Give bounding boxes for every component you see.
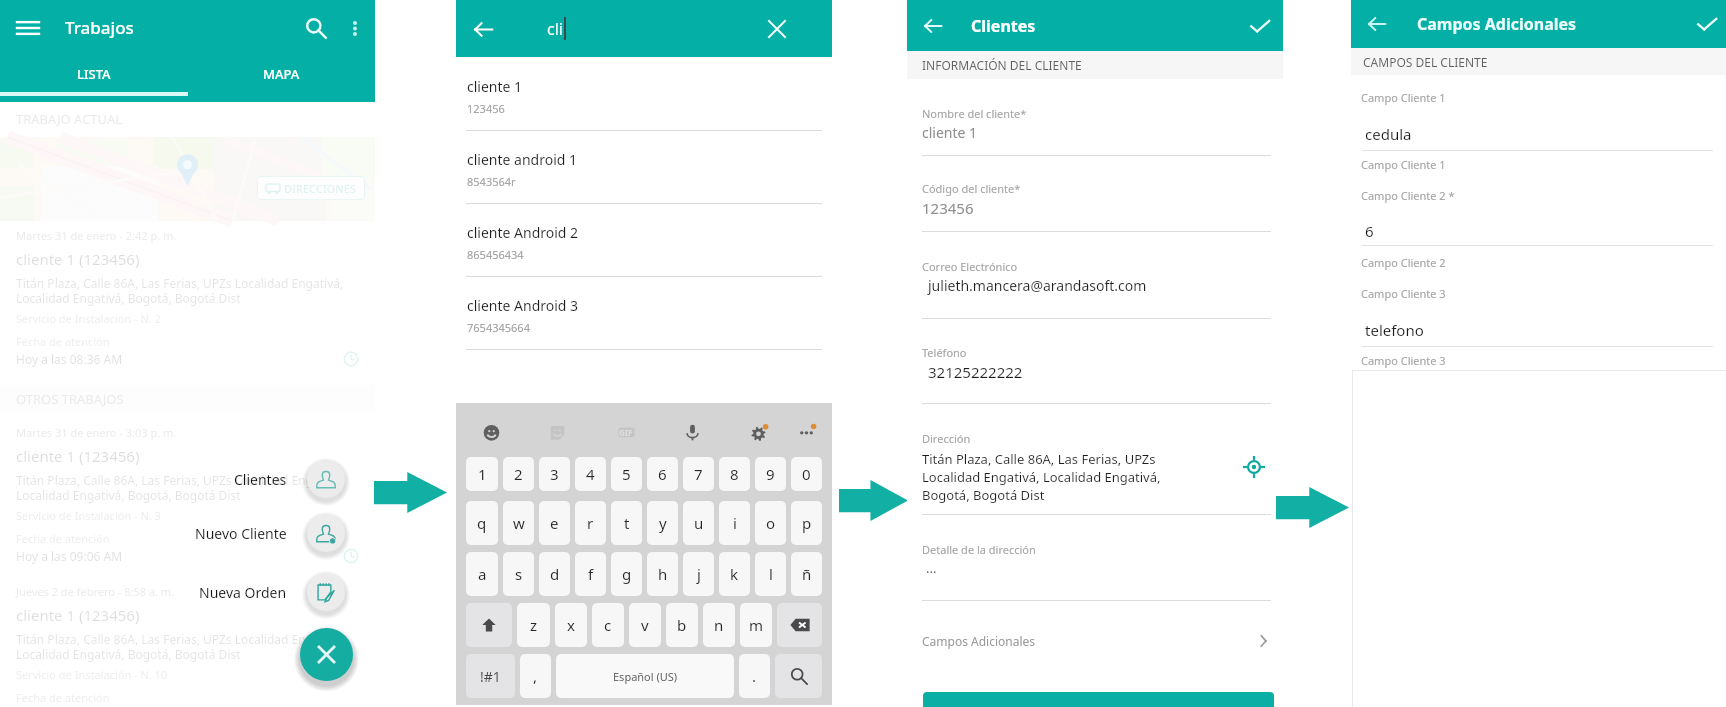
button[interactable]: Campos Adicionales xyxy=(922,628,1269,654)
button[interactable]: q xyxy=(466,501,498,545)
staticText: Martes 31 de enero - 2:42 p. m. xyxy=(16,228,177,243)
button[interactable]: Back xyxy=(1363,10,1391,38)
button[interactable]: 6 xyxy=(647,457,678,491)
button[interactable]: d xyxy=(539,552,570,596)
button[interactable]: e xyxy=(539,501,570,545)
button[interactable]: 5 xyxy=(611,457,642,491)
button[interactable]: p xyxy=(791,501,822,545)
button[interactable]: 3 xyxy=(539,457,570,491)
button[interactable]: 4 xyxy=(575,457,606,491)
button[interactable]: Save xyxy=(1246,12,1274,40)
staticText: 7 xyxy=(694,464,703,484)
button[interactable]: Close menu xyxy=(300,628,353,681)
button[interactable]: k xyxy=(719,552,750,596)
button[interactable]: More options xyxy=(343,16,367,40)
button[interactable]: Search xyxy=(298,10,334,46)
button[interactable]: g xyxy=(611,552,642,596)
staticText: Titán Plaza, Calle 86A, Las Ferias, UPZs… xyxy=(16,631,359,662)
button[interactable]: z xyxy=(517,603,550,647)
button[interactable] xyxy=(307,460,345,498)
button[interactable]: 7 xyxy=(683,457,714,491)
staticText: Hoy a las 08:36 AM xyxy=(16,351,123,367)
button[interactable]: j xyxy=(683,552,714,596)
button[interactable]: y xyxy=(647,501,678,545)
button[interactable]: Back xyxy=(919,12,947,40)
staticText: Campo Cliente 2 xyxy=(1361,255,1446,270)
button[interactable]: i xyxy=(719,501,750,545)
button[interactable]: , xyxy=(520,654,551,698)
button[interactable]: x xyxy=(555,603,587,647)
button[interactable]: f xyxy=(575,552,606,596)
button[interactable]: Save xyxy=(1693,10,1721,38)
button[interactable]: Shift xyxy=(466,603,512,647)
button[interactable]: 8 xyxy=(719,457,750,491)
button[interactable]: Search xyxy=(775,654,822,698)
button[interactable]: b xyxy=(666,603,698,647)
button[interactable]: c xyxy=(592,603,624,647)
button[interactable]: Keyboard tool xyxy=(546,421,568,443)
button[interactable] xyxy=(307,514,345,552)
staticText: Campo Cliente 2 * xyxy=(1361,188,1455,203)
button[interactable]: Español (US) xyxy=(556,654,734,698)
button[interactable]: Clear search xyxy=(763,15,791,43)
button[interactable]: Clientes xyxy=(0,460,287,498)
staticText: Titán Plaza, Calle 86A, Las Ferias, UPZs… xyxy=(16,472,359,503)
button[interactable]: cliente Android 3 xyxy=(456,277,832,350)
staticText: Campo Cliente 1 xyxy=(1361,90,1446,105)
staticText: 5 xyxy=(622,464,631,484)
button[interactable]: m xyxy=(740,603,772,647)
staticText: p xyxy=(802,513,812,533)
button[interactable]: MAPA xyxy=(187,55,375,92)
staticText: Nuevo Cliente xyxy=(195,524,287,543)
button[interactable]: 0 xyxy=(791,457,822,491)
staticText: 7654345664 xyxy=(467,320,530,335)
button[interactable]: w xyxy=(503,501,534,545)
button[interactable]: u xyxy=(683,501,714,545)
button[interactable]: a xyxy=(466,552,498,596)
staticText: w xyxy=(513,513,525,533)
button[interactable]: Use current location xyxy=(1241,454,1266,479)
button[interactable]: Nueva Orden xyxy=(0,573,287,611)
button[interactable]: Keyboard tool xyxy=(796,421,818,443)
button[interactable]: r xyxy=(575,501,606,545)
button[interactable]: Backspace xyxy=(777,603,822,647)
button[interactable]: h xyxy=(647,552,678,596)
button[interactable]: v xyxy=(629,603,661,647)
staticText: Hoy a las 09:06 AM xyxy=(16,548,123,564)
button[interactable]: Keyboard tool xyxy=(748,421,770,443)
button[interactable]: l xyxy=(755,552,786,596)
staticText: Fecha de atención xyxy=(16,690,110,705)
button[interactable]: Keyboard tool xyxy=(615,421,637,443)
button[interactable]: 9 xyxy=(755,457,786,491)
button[interactable]: LISTA xyxy=(0,55,187,92)
button[interactable]: Menu xyxy=(12,12,44,44)
button[interactable]: cliente android 1 xyxy=(456,131,832,204)
staticText: 8543564r xyxy=(467,174,516,189)
button[interactable]: Keyboard tool xyxy=(681,421,703,443)
button[interactable]: t xyxy=(611,501,642,545)
button[interactable]: n xyxy=(703,603,735,647)
staticText: ñ xyxy=(802,564,812,584)
staticText: i xyxy=(733,513,737,533)
button[interactable] xyxy=(923,692,1274,707)
staticText: Campo Cliente 1 xyxy=(1361,157,1446,172)
staticText: cliente Android 3 xyxy=(467,296,579,315)
staticText: 6 xyxy=(1365,221,1374,241)
button[interactable]: ñ xyxy=(791,552,822,596)
button[interactable]: . xyxy=(739,654,770,698)
button[interactable]: cliente 1 xyxy=(456,58,832,131)
button[interactable]: s xyxy=(503,552,534,596)
button[interactable]: Keyboard tool xyxy=(480,421,502,443)
staticText: Martes 31 de enero - 3:03 p. m. xyxy=(16,425,177,440)
button[interactable]: Nuevo Cliente xyxy=(0,514,287,552)
button[interactable]: cliente Android 2 xyxy=(456,204,832,277)
button[interactable]: !#1 xyxy=(466,654,515,698)
staticText: s xyxy=(515,564,523,584)
button[interactable]: Back xyxy=(468,14,498,44)
button[interactable]: 1 xyxy=(466,457,498,491)
button[interactable]: DIRECCIONES xyxy=(257,176,365,200)
button[interactable] xyxy=(307,573,345,611)
staticText: INFORMACIÓN DEL CLIENTE xyxy=(922,57,1082,73)
button[interactable]: 2 xyxy=(503,457,534,491)
button[interactable]: o xyxy=(755,501,786,545)
